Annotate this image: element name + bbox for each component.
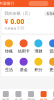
button[interactable]: 基金 <box>16 58 31 72</box>
button[interactable]: 去充值 <box>44 11 54 16</box>
button[interactable]: 更多 <box>46 58 54 72</box>
button[interactable]: 生活 <box>12 91 25 100</box>
staticText: 我的余额（元） <box>4 11 32 16</box>
staticText: 发现 <box>40 98 48 100</box>
staticText: 更多 <box>49 67 54 72</box>
staticText: 积分 <box>34 67 42 72</box>
button[interactable]: 发现 <box>37 91 50 100</box>
staticText: 贷款 <box>49 49 54 54</box>
staticText: 转账 <box>5 49 13 54</box>
staticText: 理财 <box>27 98 35 100</box>
staticText: 理财 <box>34 49 42 54</box>
button[interactable]: 我的 <box>50 91 54 100</box>
button[interactable]: 首页 <box>0 91 12 100</box>
button[interactable]: 贷款 <box>46 39 54 54</box>
staticText: 去充值 <box>46 12 54 15</box>
staticText: 首页 <box>2 98 10 100</box>
staticText: 中国银行 <box>0 1 14 6</box>
staticText: 生活 <box>14 98 22 100</box>
button[interactable]: 生活 <box>1 58 16 72</box>
staticText: ¥ 0.00 <box>4 17 24 26</box>
button[interactable]: 积分 <box>31 58 46 72</box>
staticText: 基金 <box>20 67 28 72</box>
button[interactable]: 转账 <box>1 39 16 54</box>
staticText: 可用额度 0.00 <box>4 27 24 30</box>
button[interactable]: 理财 <box>31 39 46 54</box>
staticText: 我的 <box>52 98 54 100</box>
staticText: 生活 <box>5 67 13 72</box>
staticText: 信用卡 <box>18 49 30 54</box>
button[interactable]: 信用卡 <box>16 39 31 54</box>
button[interactable]: 理财 <box>25 91 37 100</box>
